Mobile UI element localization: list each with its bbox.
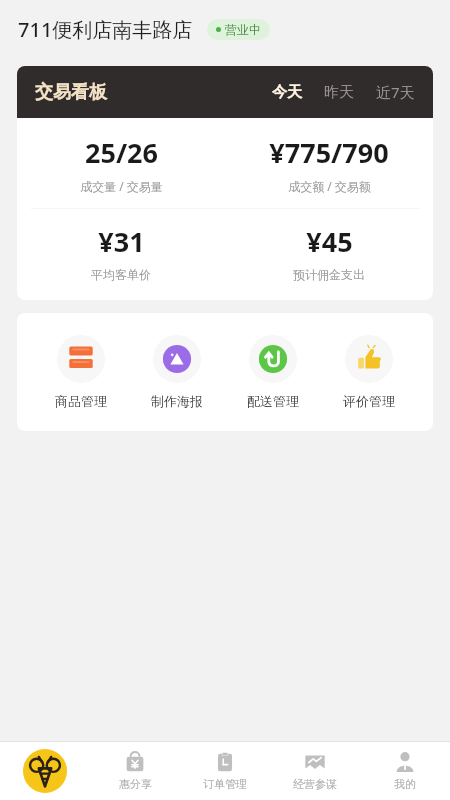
button[interactable]: 配送管理 <box>241 335 305 409</box>
button[interactable]: ¥45 <box>225 223 433 282</box>
staticText: 营业中 <box>225 22 261 37</box>
staticText: 制作海报 <box>151 393 203 409</box>
button[interactable]: ¥31 <box>17 223 225 282</box>
staticText: 预计佣金支出 <box>293 267 365 282</box>
button[interactable]: 评价管理 <box>337 335 401 409</box>
staticText: 今天 <box>272 83 302 102</box>
staticText: 近7天 <box>376 82 415 102</box>
staticText: 评价管理 <box>343 393 395 409</box>
staticText: 25/26 <box>85 134 158 171</box>
staticText: 昨天 <box>324 83 354 102</box>
button[interactable]: 蜂鸟首页 <box>0 742 90 800</box>
button[interactable]: 近7天 <box>376 82 415 102</box>
staticText: 商品管理 <box>55 393 107 409</box>
button[interactable]: 25/26 <box>17 134 225 194</box>
button[interactable]: 惠分享 <box>90 742 180 800</box>
staticText: 交易看板 <box>35 81 107 104</box>
button[interactable]: 制作海报 <box>145 335 209 409</box>
button[interactable]: 我的 <box>360 742 450 800</box>
button[interactable]: 订单管理 <box>180 742 270 800</box>
staticText: ¥31 <box>98 223 145 260</box>
button[interactable]: 昨天 <box>324 83 354 102</box>
staticText: 惠分享 <box>119 777 152 791</box>
staticText: 平均客单价 <box>91 267 151 282</box>
staticText: 经营参谋 <box>293 777 337 791</box>
staticText: 订单管理 <box>203 777 247 791</box>
button[interactable]: ¥775/790 <box>225 134 433 194</box>
staticText: ¥775/790 <box>269 134 389 171</box>
staticText: 711便利店南丰路店 <box>18 16 193 43</box>
staticText: 配送管理 <box>247 393 299 409</box>
staticText: ¥45 <box>306 223 353 260</box>
button[interactable]: 经营参谋 <box>270 742 360 800</box>
staticText: 成交额 / 交易额 <box>288 178 371 194</box>
button[interactable]: 今天 <box>272 83 302 102</box>
button[interactable]: 商品管理 <box>49 335 113 409</box>
staticText: 成交量 / 交易量 <box>80 178 163 194</box>
button[interactable]: 营业中 <box>207 19 270 40</box>
staticText: 我的 <box>394 777 416 791</box>
